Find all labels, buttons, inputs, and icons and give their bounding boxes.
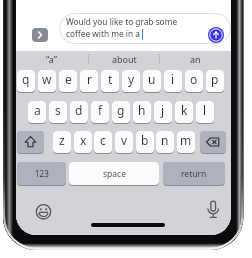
staticText: w — [42, 71, 52, 87]
button[interactable] — [32, 28, 48, 42]
staticText: e — [65, 71, 72, 87]
staticText: f — [98, 102, 103, 118]
staticText: t — [108, 71, 113, 87]
staticText: q — [22, 71, 30, 87]
button[interactable]: e — [59, 70, 77, 93]
button[interactable]: s — [49, 101, 67, 124]
button[interactable]: y — [122, 70, 140, 93]
button[interactable]: c — [94, 131, 112, 154]
button[interactable]: l — [196, 101, 214, 124]
button[interactable]: return — [163, 162, 225, 186]
staticText: “a” — [46, 53, 58, 65]
button[interactable]: u — [143, 70, 161, 93]
button[interactable]: 123 — [17, 162, 66, 186]
staticText: n — [161, 132, 169, 148]
button[interactable]: about — [88, 51, 160, 67]
button[interactable]: z — [53, 131, 71, 154]
staticText: u — [148, 71, 156, 87]
button[interactable]: h — [133, 101, 151, 124]
button[interactable] — [33, 201, 54, 222]
button[interactable]: b — [136, 131, 154, 154]
staticText: a — [34, 102, 41, 118]
button[interactable] — [208, 27, 224, 43]
staticText: d — [75, 102, 83, 118]
staticText: 123 — [35, 168, 49, 179]
staticText: m — [180, 132, 192, 148]
button[interactable]: space — [69, 162, 159, 186]
staticText: o — [190, 71, 198, 87]
staticText: coffee with me in a — [66, 28, 140, 39]
staticText: x — [80, 132, 87, 148]
staticText: y — [128, 71, 135, 87]
button[interactable] — [17, 131, 44, 154]
staticText: s — [55, 102, 61, 118]
button[interactable]: g — [112, 101, 130, 124]
staticText: g — [117, 102, 125, 118]
staticText: b — [141, 132, 149, 148]
button[interactable] — [203, 199, 224, 220]
staticText: p — [211, 71, 219, 87]
button[interactable]: a — [28, 101, 46, 124]
staticText: about — [112, 53, 137, 65]
button[interactable]: “a” — [16, 51, 88, 67]
button[interactable]: o — [185, 70, 203, 93]
staticText: space — [103, 168, 126, 180]
button[interactable]: f — [91, 101, 109, 124]
button[interactable]: m — [177, 131, 195, 154]
button[interactable]: i — [164, 70, 182, 93]
button[interactable]: j — [154, 101, 172, 124]
button[interactable]: p — [206, 70, 224, 93]
staticText: c — [100, 132, 106, 148]
button[interactable]: x — [74, 131, 92, 154]
button[interactable]: n — [156, 131, 174, 154]
staticText: v — [121, 132, 128, 148]
staticText: an — [190, 53, 201, 65]
button[interactable]: v — [115, 131, 133, 154]
button[interactable]: an — [159, 51, 231, 67]
button[interactable]: d — [70, 101, 88, 124]
button[interactable] — [200, 131, 226, 154]
button[interactable]: t — [101, 70, 119, 93]
button[interactable]: w — [38, 70, 56, 93]
staticText: j — [161, 102, 165, 118]
button[interactable] — [59, 13, 231, 44]
staticText: Would you like to grab some — [66, 16, 178, 27]
staticText: return — [181, 168, 207, 180]
staticText: l — [203, 102, 207, 118]
button[interactable]: q — [17, 70, 35, 93]
staticText: z — [59, 132, 65, 148]
button[interactable]: k — [175, 101, 193, 124]
button[interactable]: r — [80, 70, 98, 93]
staticText: i — [171, 71, 175, 87]
staticText: k — [181, 102, 188, 118]
staticText: r — [87, 71, 92, 87]
staticText: h — [138, 102, 146, 118]
